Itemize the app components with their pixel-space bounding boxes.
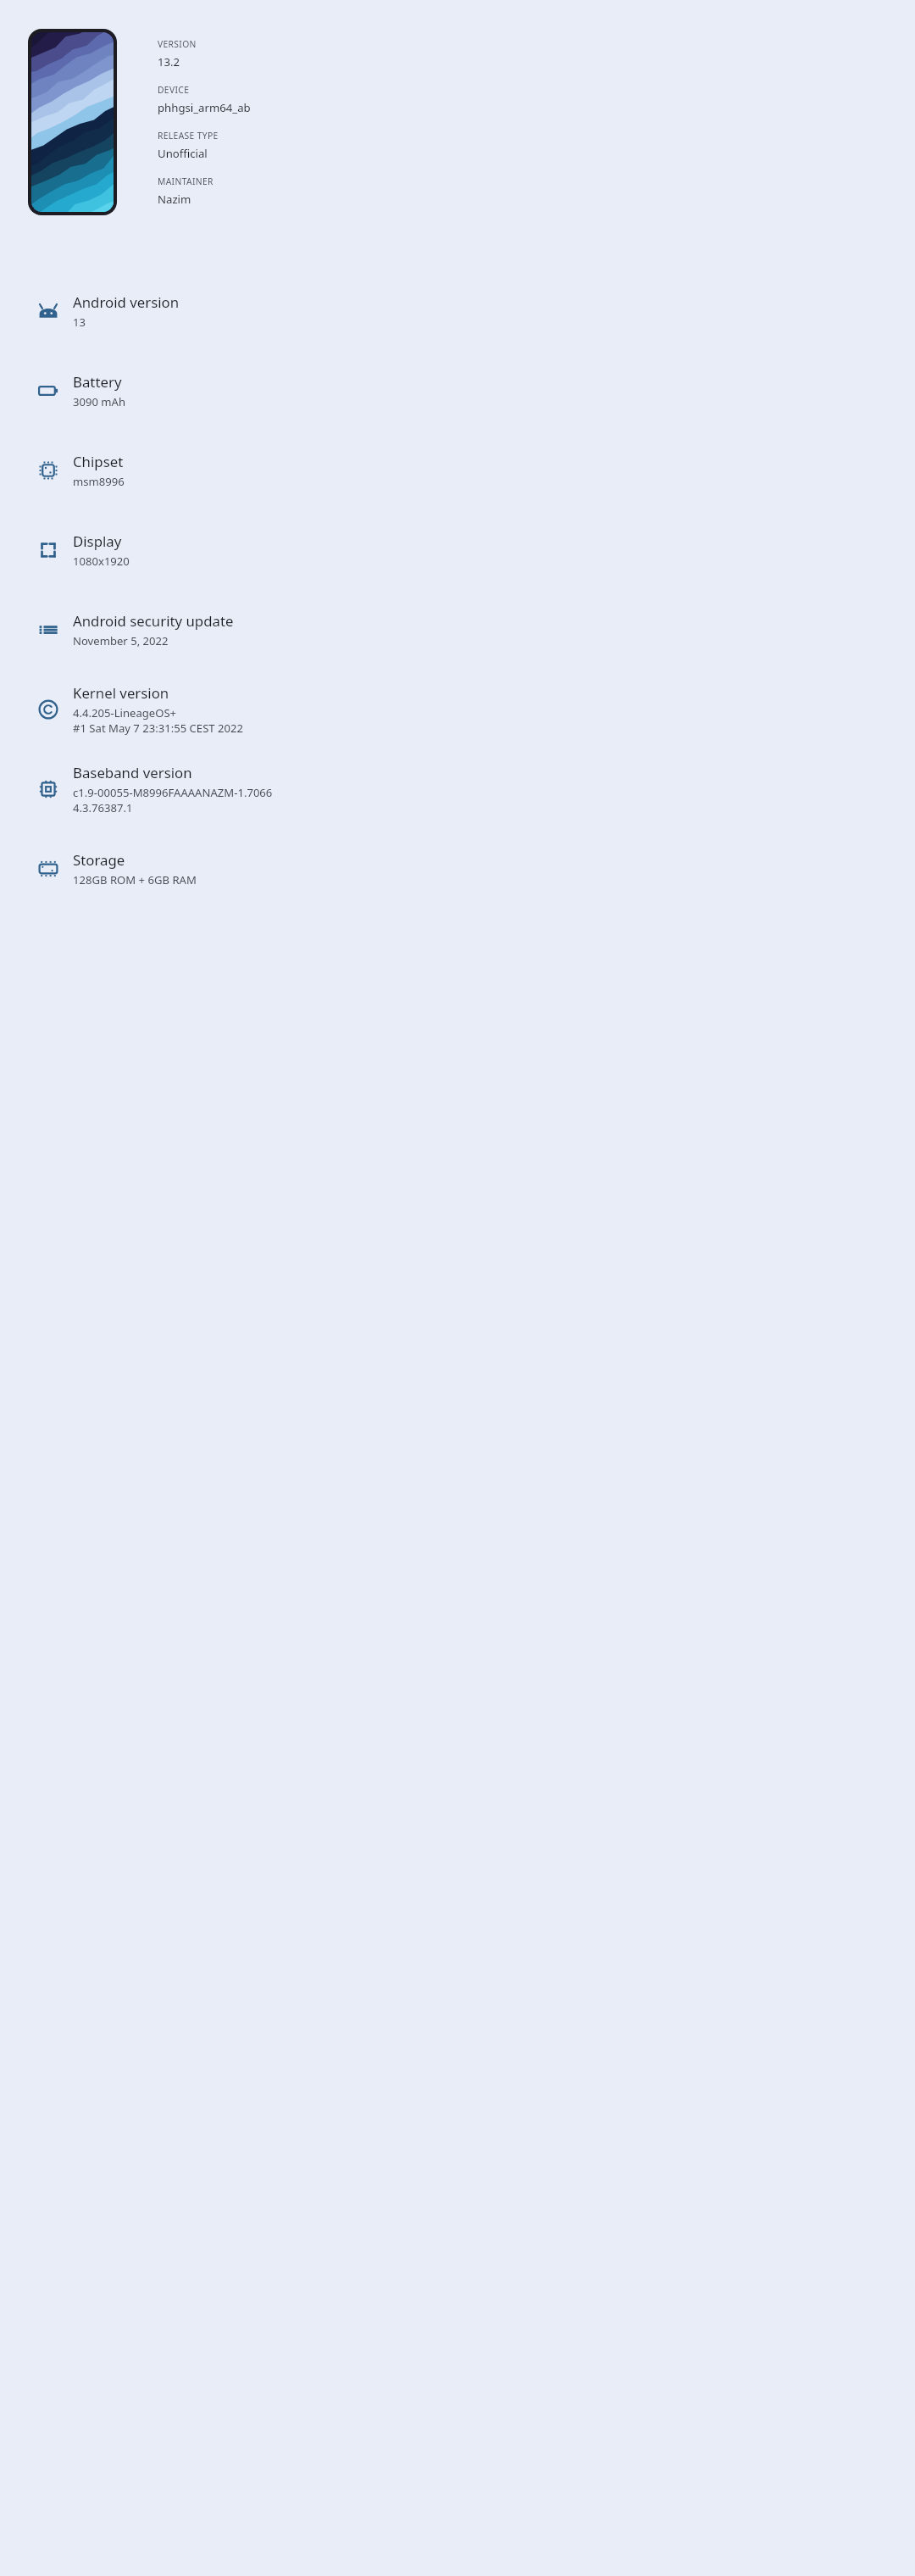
other: Android security update (37, 619, 59, 641)
staticText: 1080x1920 (73, 554, 130, 569)
staticText: Storage (73, 850, 125, 870)
staticText: 128GB ROM + 6GB RAM (73, 872, 197, 887)
other: Storage (37, 858, 59, 880)
staticText: Battery (73, 372, 122, 392)
staticText: 4.3.76387.1 (73, 800, 133, 815)
staticText: Chipset (73, 452, 124, 471)
button[interactable]: Chipset (0, 431, 915, 510)
staticText: Android security update (73, 611, 234, 631)
staticText: #1 Sat May 7 23:31:55 CEST 2022 (73, 721, 243, 736)
button[interactable]: Storage (0, 829, 915, 909)
staticText: DEVICE (158, 84, 190, 96)
staticText: 13 (73, 314, 86, 330)
button[interactable]: Kernel version (0, 670, 915, 749)
staticText: Baseband version (73, 763, 192, 782)
other: Android version (37, 300, 59, 322)
button[interactable]: Android version (0, 271, 915, 351)
staticText: 4.4.205-LineageOS+ (73, 705, 177, 721)
staticText: msm8996 (73, 474, 125, 489)
staticText: Nazim (158, 192, 191, 207)
staticText: Unofficial (158, 146, 208, 161)
button[interactable]: Display (0, 510, 915, 590)
staticText: MAINTAINER (158, 175, 213, 187)
other: Chipset (37, 459, 59, 481)
button[interactable]: Baseband version (0, 749, 915, 829)
staticText: VERSION (158, 38, 197, 50)
staticText: phhgsi_arm64_ab (158, 100, 251, 115)
button[interactable]: Battery (0, 351, 915, 431)
other: Baseband version (37, 778, 59, 800)
other: Kernel version (37, 698, 59, 721)
staticText: c1.9-00055-M8996FAAAANAZM-1.7066 (73, 785, 273, 800)
staticText: RELEASE TYPE (158, 130, 219, 142)
button[interactable]: Android security update (0, 590, 915, 670)
staticText: 13.2 (158, 54, 180, 70)
staticText: Kernel version (73, 683, 169, 703)
staticText: Android version (73, 292, 180, 312)
staticText: 3090 mAh (73, 394, 126, 409)
staticText: November 5, 2022 (73, 633, 169, 648)
other: Display (37, 539, 59, 561)
staticText: Display (73, 531, 122, 551)
other: Battery (37, 380, 59, 402)
